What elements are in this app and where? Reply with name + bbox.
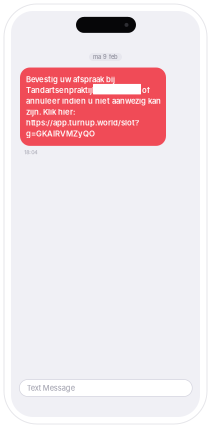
staticText: ma 9 feb <box>93 53 118 60</box>
staticText: 18:04 <box>24 149 37 155</box>
staticText: https://app.turnup.world/slot? <box>26 118 139 127</box>
staticText: annuleer indien u niet aanwezig kan <box>26 96 161 106</box>
button[interactable]: Text Message <box>19 379 192 396</box>
staticText: Tandartsenpraktijk <box>26 85 96 95</box>
staticText: zijn. Klik hier: <box>26 107 75 117</box>
staticText: of <box>142 85 150 95</box>
staticText: Text Message <box>27 383 75 392</box>
staticText: g=GKAIRVMZyQO <box>26 129 95 138</box>
staticText: Bevestig uw afspraak bij <box>26 75 115 84</box>
